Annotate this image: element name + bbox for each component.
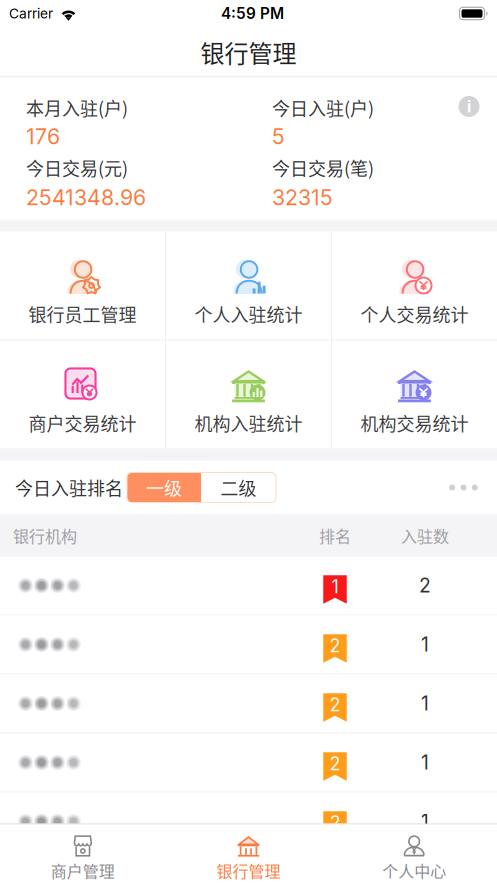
- staticText: 2541348.96: [26, 184, 146, 210]
- staticText: 今日交易(笔): [272, 154, 374, 181]
- button[interactable]: More options: [437, 472, 497, 502]
- staticText: 银行机构: [13, 524, 77, 547]
- staticText: 银行管理: [200, 35, 296, 69]
- staticText: 一级: [146, 474, 182, 501]
- staticText: 银行员工管理: [28, 301, 136, 327]
- staticText: 个人入驻统计: [194, 301, 302, 327]
- staticText: 1: [421, 810, 429, 833]
- button[interactable]: Info: [451, 88, 487, 124]
- button[interactable]: 一级: [127, 472, 201, 502]
- button[interactable]: 银行员工管理: [0, 231, 165, 339]
- staticText: 排名: [319, 524, 351, 547]
- staticText: 今日交易(元): [26, 154, 128, 181]
- staticText: 银行管理: [216, 859, 280, 882]
- staticText: 今日入驻(户): [272, 94, 374, 121]
- button[interactable]: 2: [0, 674, 497, 733]
- staticText: 1: [421, 751, 429, 774]
- button[interactable]: 机构入驻统计: [166, 340, 331, 448]
- button[interactable]: 1: [0, 556, 497, 615]
- staticText: 机构交易统计: [360, 410, 468, 436]
- staticText: 4:59 PM: [221, 4, 284, 23]
- staticText: 商户交易统计: [28, 410, 136, 436]
- staticText: 本月入驻(户): [26, 94, 128, 121]
- button[interactable]: 个人中心: [331, 824, 497, 883]
- button[interactable]: 商户交易统计: [0, 340, 165, 448]
- button[interactable]: 个人入驻统计: [166, 231, 331, 339]
- staticText: 2: [329, 812, 340, 834]
- button[interactable]: 2: [0, 733, 497, 792]
- staticText: 2: [329, 753, 340, 775]
- staticText: 个人中心: [382, 859, 446, 882]
- staticText: 商户管理: [51, 859, 115, 882]
- button[interactable]: 个人交易统计: [332, 231, 497, 339]
- button[interactable]: 银行管理: [166, 824, 331, 883]
- staticText: i: [467, 97, 471, 116]
- button[interactable]: 二级: [201, 472, 276, 502]
- staticText: 入驻数: [401, 524, 449, 547]
- button[interactable]: 2: [0, 615, 497, 674]
- staticText: 5: [272, 123, 285, 149]
- staticText: 32315: [272, 184, 333, 210]
- staticText: 今日入驻排名: [15, 474, 123, 501]
- staticText: 2: [329, 635, 340, 657]
- staticText: 机构入驻统计: [194, 410, 302, 436]
- staticText: 176: [26, 123, 60, 149]
- staticText: 1: [421, 692, 429, 715]
- button[interactable]: 2: [0, 792, 497, 851]
- staticText: 1: [421, 633, 429, 656]
- staticText: 2: [329, 694, 340, 716]
- staticText: 2: [419, 574, 431, 597]
- staticText: 1: [331, 576, 338, 598]
- button[interactable]: 机构交易统计: [332, 340, 497, 448]
- staticText: Carrier: [9, 5, 53, 22]
- staticText: 个人交易统计: [360, 301, 468, 327]
- button[interactable]: 商户管理: [0, 824, 166, 883]
- staticText: 二级: [220, 474, 256, 501]
